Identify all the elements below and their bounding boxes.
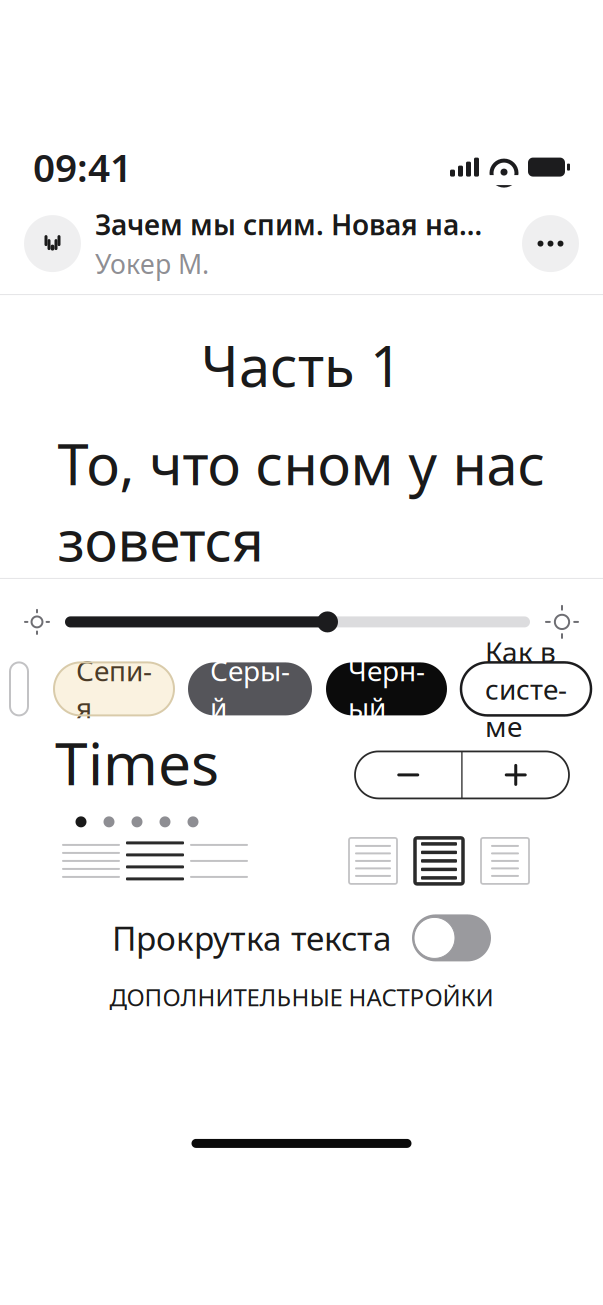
button[interactable]: Поля страницы [479,836,531,886]
staticText: Как в системе [485,633,567,745]
staticText: Times [55,722,219,802]
button[interactable]: Свернуть [24,215,81,272]
button[interactable]: Прокрутка текста [112,914,491,961]
staticText: Прокрутка текста [112,916,392,960]
button[interactable]: Межстрочный интервал [62,840,120,882]
button[interactable]: Сепия [54,662,174,715]
staticText: То, что сном у нас зовется [57,425,545,578]
button[interactable]: Черный [326,662,447,715]
staticText: Сепия [76,652,152,726]
staticText: ДОПОЛНИТЕЛЬНЫЕ НАСТРОЙКИ [109,981,493,1013]
button[interactable]: Уменьшить размер шрифта [355,751,461,798]
button[interactable]: Серый [188,662,312,715]
button[interactable]: Минимальная яркость [24,609,50,635]
button[interactable]: Поля страницы [347,836,399,886]
button[interactable]: ДОПОЛНИТЕЛЬНЫЕ НАСТРОЙКИ [97,973,505,1021]
button[interactable]: Межстрочный интервал [190,840,248,882]
button[interactable]: Межстрочный интервал [126,840,184,882]
button[interactable]: Увеличить размер шрифта [463,751,569,798]
staticText: Часть 1 [201,327,402,403]
staticText: Черный [348,652,425,726]
button[interactable]: Как в системе [461,662,591,715]
staticText: Серый [210,652,290,726]
button[interactable]: Поля страницы [413,836,465,886]
staticText: Уокер М. [95,246,209,281]
button[interactable]: Ещё [522,215,579,272]
staticText: 09:41 [33,141,132,193]
button[interactable]: Максимальная яркость [545,605,579,639]
staticText: Зачем мы спим. Новая наука о сне и с... [95,206,490,243]
button[interactable]: Times [22,722,252,827]
